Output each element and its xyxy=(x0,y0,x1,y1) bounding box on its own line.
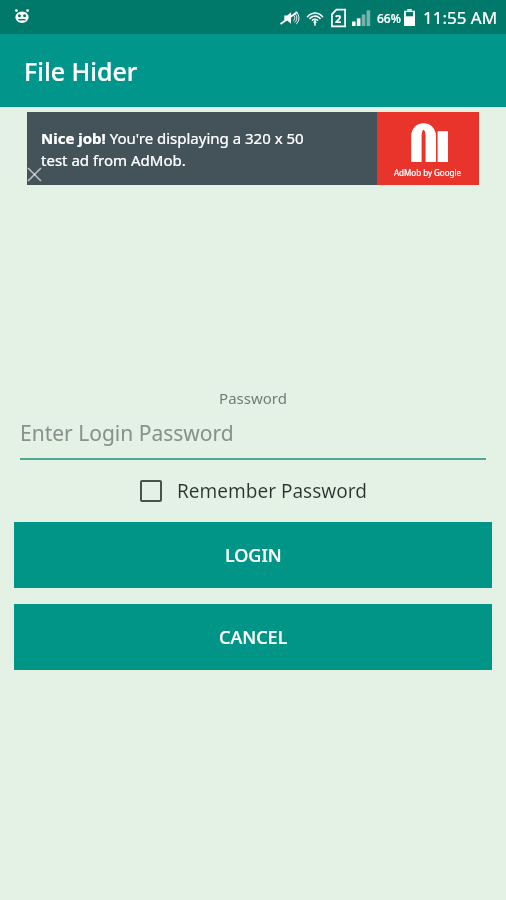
staticText: CANCEL xyxy=(219,625,288,650)
button[interactable]: LOGIN xyxy=(14,522,492,588)
staticText: 2 xyxy=(335,11,342,26)
staticText: Password xyxy=(0,388,506,408)
staticText: AdMob by Google xyxy=(394,167,462,178)
button[interactable]: Enter Login Password xyxy=(20,419,486,448)
staticText: test ad from AdMob. xyxy=(41,150,186,170)
staticText: File Hider xyxy=(24,54,138,88)
button[interactable]: Remember Password xyxy=(0,478,506,504)
staticText: 66% xyxy=(377,10,401,26)
staticText: Enter Login Password xyxy=(20,419,234,448)
button[interactable]: CANCEL xyxy=(14,604,492,670)
staticText: 11:55 AM xyxy=(423,6,498,29)
staticText: Remember Password xyxy=(177,478,367,504)
button[interactable]: Nice job! You're displaying a 320 x 50 xyxy=(27,112,479,185)
button[interactable]: Close ad xyxy=(21,161,47,187)
staticText: LOGIN xyxy=(225,543,282,568)
staticText: Nice job! You're displaying a 320 x 50 xyxy=(41,128,304,148)
